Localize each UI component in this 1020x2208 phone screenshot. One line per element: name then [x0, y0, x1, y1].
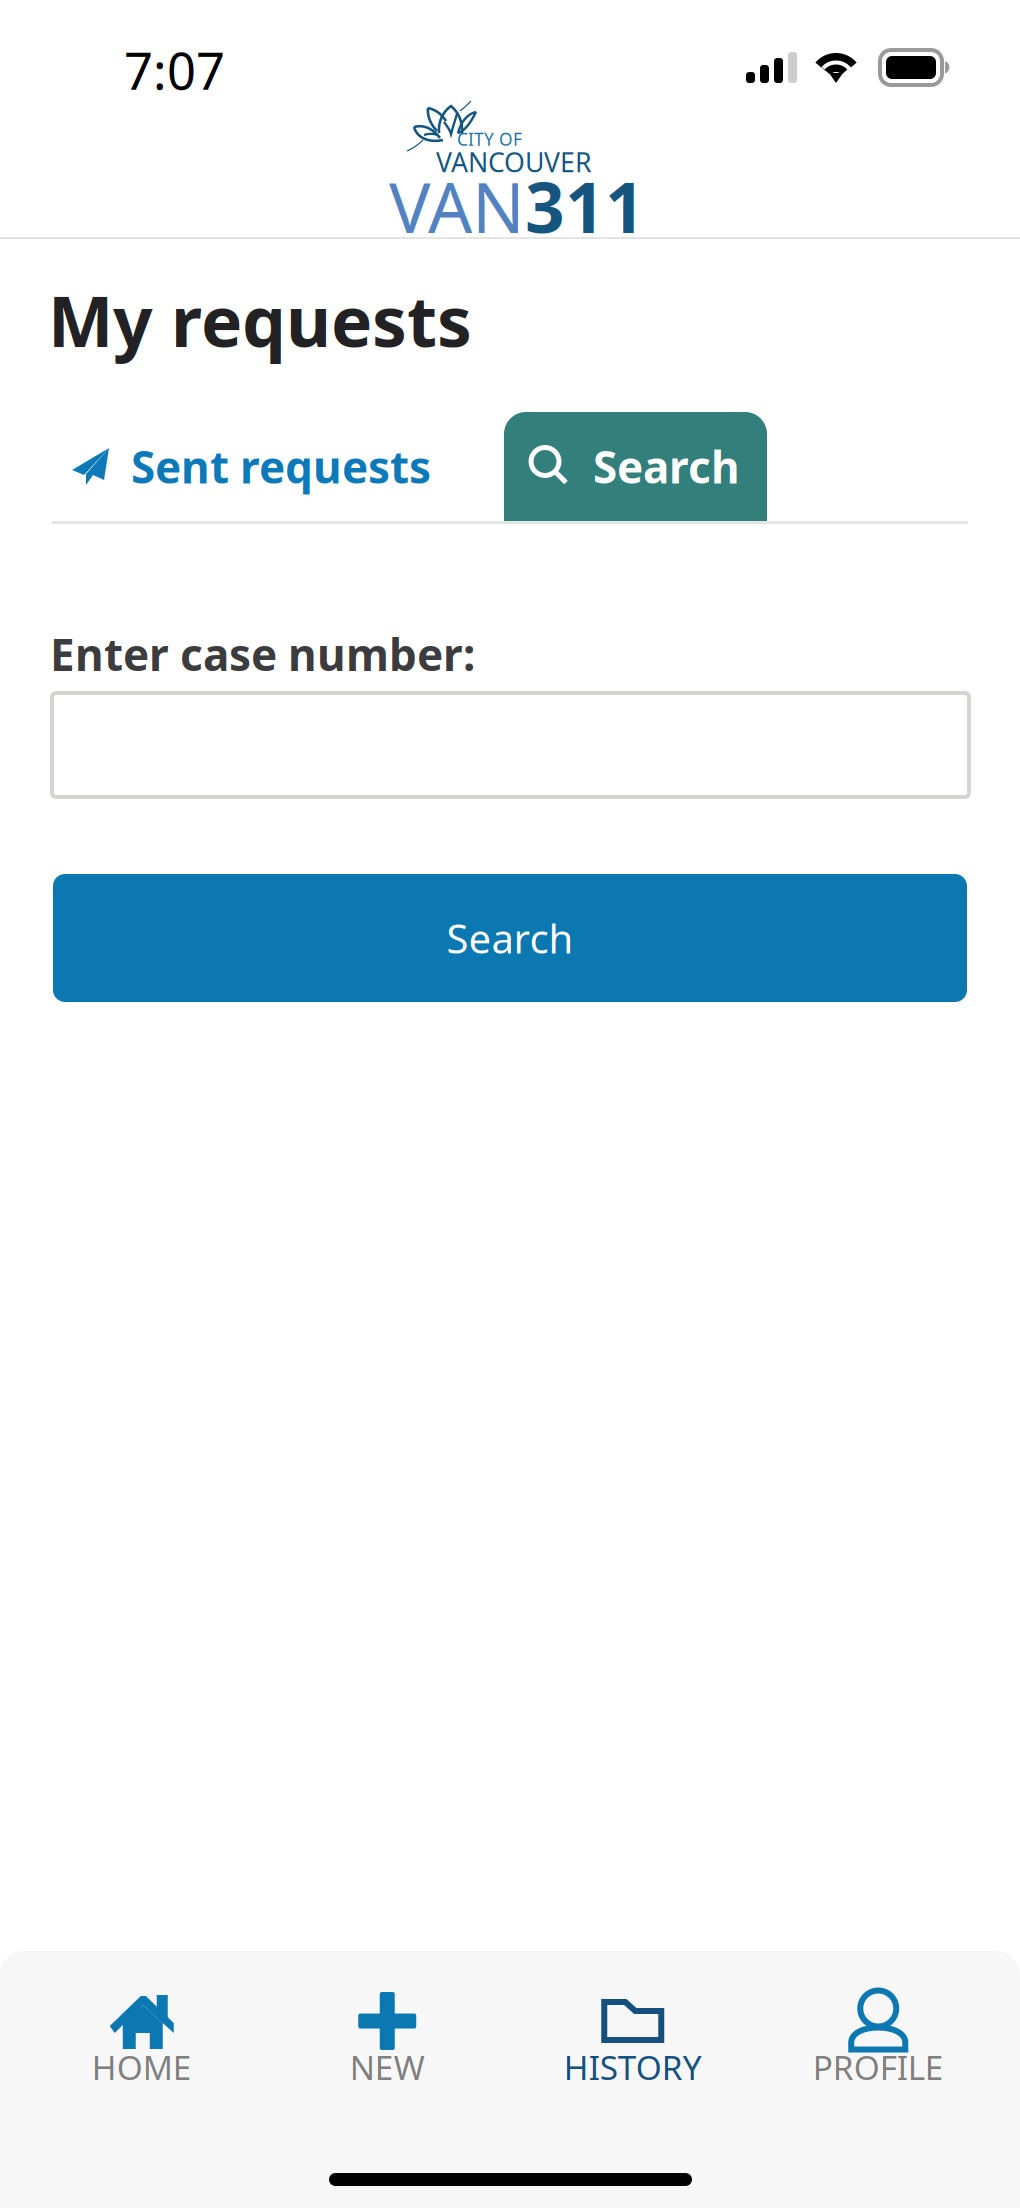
- staticText: VAN: [389, 160, 525, 252]
- staticText: My requests: [48, 274, 472, 366]
- button[interactable]: Search: [504, 412, 767, 521]
- staticText: CITY OF: [457, 127, 522, 150]
- staticText: Sent requests: [131, 437, 431, 496]
- button[interactable]: Sent requests: [54, 412, 449, 521]
- button[interactable]: Search: [53, 874, 967, 1002]
- staticText: Enter case number:: [50, 625, 475, 683]
- staticText: Search: [593, 437, 740, 496]
- staticText: HISTORY: [564, 2045, 702, 2089]
- button[interactable]: HISTORY: [510, 1992, 755, 2084]
- button[interactable]: PROFILE: [755, 1992, 1001, 2084]
- staticText: NEW: [350, 2045, 425, 2089]
- staticText: PROFILE: [813, 2045, 944, 2089]
- staticText: 311: [525, 160, 645, 252]
- staticText: 7:07: [124, 36, 225, 104]
- button[interactable]: HOME: [19, 1992, 264, 2084]
- staticText: VANCOUVER: [436, 144, 592, 180]
- button[interactable]: NEW: [264, 1992, 510, 2084]
- staticText: HOME: [92, 2045, 192, 2089]
- staticText: Search: [446, 911, 573, 964]
